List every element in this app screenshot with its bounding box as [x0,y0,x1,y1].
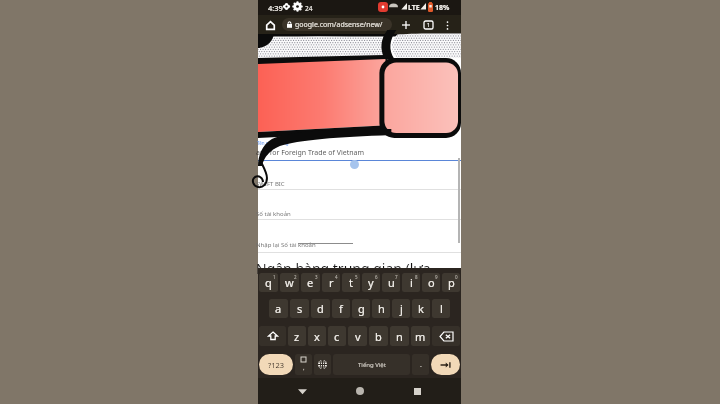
button[interactable]: g [352,299,370,318]
button[interactable]: d [311,299,330,318]
button[interactable]: Home [263,18,277,32]
staticText: n [396,329,403,344]
other: Change language [318,360,327,369]
staticText: p [448,275,455,290]
button[interactable]: a [269,299,288,318]
button[interactable]: h [372,299,390,318]
button[interactable]: l [432,299,450,318]
staticText: o [428,275,435,290]
staticText: s [297,301,303,316]
staticText: 0 [455,274,458,280]
staticText: u [388,275,395,290]
staticText: Tiếng Việt [358,361,386,369]
other: Backspace [440,332,453,341]
staticText: ?123 [268,360,285,370]
button[interactable]: o [422,273,440,292]
button[interactable]: w [280,273,299,292]
button[interactable]: q [259,273,278,292]
staticText: m [415,329,426,344]
staticText: f [339,301,343,316]
staticText: a [275,301,282,316]
button[interactable]: r [322,273,340,292]
staticText: d [317,301,324,316]
staticText: SWIFT BIC [256,180,285,188]
button[interactable]: m [411,326,430,346]
staticText: 3 [315,274,318,280]
button[interactable]: b [369,326,388,346]
staticText: . [420,360,422,370]
button[interactable]: y [362,273,380,292]
button[interactable]: k [412,299,430,318]
staticText: i [410,275,413,290]
button[interactable]: p [442,273,460,292]
button[interactable]: New tab [399,18,413,32]
button[interactable]: . [412,354,429,375]
staticText: z [294,329,300,344]
staticText: Nhập lại Số tài khoản [256,241,316,249]
button[interactable]: Recents [404,378,430,404]
button[interactable]: Switch tabs [421,18,435,32]
button[interactable]: f [332,299,350,318]
staticText: google.com/adsense/new/ [295,20,383,30]
button[interactable]: SWIFT BIC [258,176,461,198]
staticText: q [265,275,272,290]
button[interactable]: Shift [259,326,286,346]
button[interactable]: google.com/adsense/new/ [282,18,392,31]
other: Shift [268,331,278,341]
staticText: 6 [375,274,378,280]
staticText: Tên ngân hàng [257,140,289,146]
staticText: c [334,329,340,344]
button[interactable]: n [390,326,409,346]
button[interactable]: Số tài khoản [258,206,461,228]
staticText: j [400,301,403,316]
button[interactable]: u [382,273,400,292]
staticText: b [375,329,382,344]
staticText: 1 [427,22,430,29]
staticText: 1 [273,274,276,280]
button[interactable]: Nhập lại Số tài khoản [258,237,461,259]
button[interactable]: e [301,273,320,292]
staticText: 18% [435,3,450,13]
staticText: l [440,301,443,316]
button[interactable]: z [288,326,306,346]
button[interactable]: Enter [431,354,460,375]
button[interactable]: , [295,354,312,375]
staticText: g [358,301,365,316]
button[interactable]: s [290,299,309,318]
button[interactable]: c [328,326,346,346]
staticText: h [378,301,385,316]
staticText: Ngân hàng trung gian (lựa [256,259,431,278]
staticText: y [368,275,374,290]
button[interactable]: Home [347,378,373,404]
staticText: ank for Foreign Trade of Vietnam [256,148,365,158]
staticText: 8 [415,274,418,280]
staticText: w [285,275,294,290]
button[interactable]: Backspace [432,326,460,346]
staticText: t [349,275,353,290]
button[interactable]: i [402,273,420,292]
button[interactable]: j [392,299,410,318]
button[interactable]: Tiếng Việt [333,354,410,375]
staticText: r [329,275,334,290]
staticText: 7 [395,274,398,280]
staticText: , [303,364,305,372]
staticText: 4:39 [268,3,283,13]
button[interactable]: Back [289,378,315,404]
staticText: 2 [294,274,297,280]
button[interactable]: t [342,273,360,292]
staticText: x [314,329,320,344]
button[interactable]: More options [440,18,454,32]
staticText: v [355,329,361,344]
button[interactable]: Tên ngân hàng [258,138,461,166]
staticText: Số tài khoản [256,210,291,218]
button[interactable]: v [348,326,367,346]
staticText: k [418,301,424,316]
button[interactable]: x [308,326,326,346]
button[interactable]: Change language [314,354,331,375]
staticText: 5 [355,274,358,280]
staticText: 9 [435,274,438,280]
staticText: LTE [408,3,420,13]
staticText: 4 [335,274,338,280]
staticText: 24 [305,4,313,13]
button[interactable]: ?123 [259,354,293,375]
